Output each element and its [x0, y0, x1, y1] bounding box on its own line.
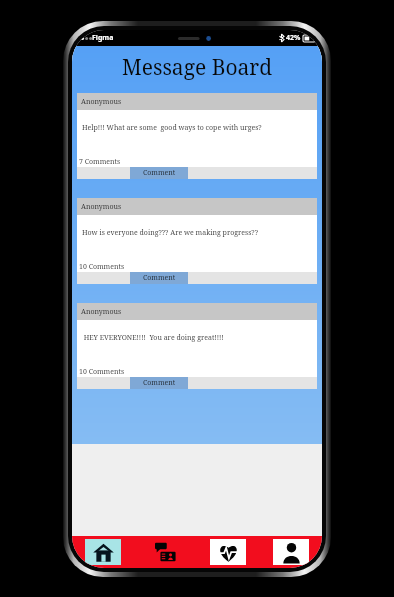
button[interactable]: Anonymous — [77, 303, 317, 389]
button[interactable]: Comment — [130, 272, 188, 284]
staticText: How is everyone doing??? Are we making p… — [82, 228, 258, 238]
staticText: Comment — [143, 378, 176, 388]
button[interactable]: Profile — [259, 536, 322, 568]
button[interactable]: Messages — [134, 536, 196, 568]
button[interactable]: Home — [72, 536, 134, 568]
button[interactable]: Anonymous — [77, 198, 317, 284]
staticText: Help!!! What are some good ways to cope … — [82, 123, 262, 133]
staticText: 10 Comments — [79, 367, 125, 377]
staticText: Message Board — [122, 53, 273, 82]
staticText: 42% — [286, 33, 301, 43]
button[interactable]: Comment — [130, 377, 188, 389]
button[interactable]: Anonymous — [77, 93, 317, 179]
staticText: Figma — [92, 33, 114, 43]
staticText: HEY EVERYONE!!!! You are doing great!!!! — [82, 333, 224, 343]
staticText: Comment — [143, 273, 176, 283]
staticText: 10 Comments — [79, 262, 125, 272]
staticText: Anonymous — [81, 97, 122, 107]
staticText: 7 Comments — [79, 157, 121, 167]
button[interactable]: Health — [196, 536, 259, 568]
staticText: Anonymous — [81, 202, 122, 212]
button[interactable]: Comment — [130, 167, 188, 179]
staticText: Anonymous — [81, 307, 122, 317]
staticText: Comment — [143, 168, 176, 178]
